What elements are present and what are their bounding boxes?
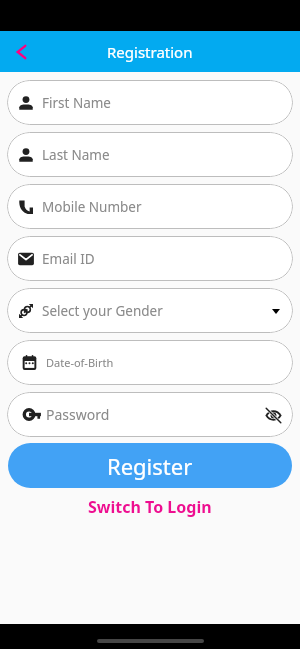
button[interactable]: Open gender dropdown bbox=[272, 304, 280, 318]
staticText: Last Name bbox=[42, 146, 110, 164]
staticText: Switch To Login bbox=[88, 496, 212, 518]
button[interactable]: Toggle password visibility bbox=[264, 406, 282, 424]
button[interactable]: Switch To Login bbox=[7, 496, 293, 518]
staticText: Mobile Number bbox=[42, 198, 142, 216]
staticText: Register bbox=[107, 451, 193, 481]
staticText: Email ID bbox=[42, 250, 95, 268]
button[interactable]: Email ID bbox=[7, 236, 293, 281]
button[interactable]: Date-of-Birth bbox=[7, 340, 293, 385]
button[interactable]: Mobile Number bbox=[7, 184, 293, 229]
button[interactable]: First Name bbox=[7, 80, 293, 125]
button[interactable]: Select your Gender bbox=[7, 288, 293, 333]
staticText: Registration bbox=[107, 42, 193, 62]
staticText: Select your Gender bbox=[42, 302, 163, 320]
button[interactable]: Last Name bbox=[7, 132, 293, 177]
button[interactable]: Register bbox=[8, 443, 292, 488]
staticText: Password bbox=[46, 405, 110, 424]
staticText: Date-of-Birth bbox=[46, 355, 114, 370]
button[interactable]: Back bbox=[9, 42, 29, 62]
staticText: First Name bbox=[42, 94, 111, 112]
button[interactable]: Password bbox=[7, 392, 293, 437]
